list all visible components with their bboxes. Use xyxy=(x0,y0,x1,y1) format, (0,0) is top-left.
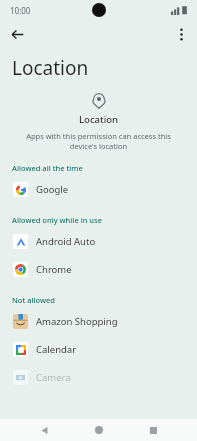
button[interactable]: Android Auto xyxy=(0,227,197,255)
staticText: Chrome xyxy=(36,263,72,276)
staticText: Calendar xyxy=(36,343,77,356)
button[interactable]: Recent apps xyxy=(143,420,163,440)
button[interactable]: More options xyxy=(170,23,192,45)
staticText: Location xyxy=(79,113,118,126)
staticText: Camera xyxy=(36,371,71,384)
staticText: Android Auto xyxy=(36,235,96,248)
button[interactable]: Google xyxy=(0,175,197,203)
button[interactable]: Amazon Shopping xyxy=(0,307,197,335)
staticText: Allowed only while in use xyxy=(12,215,102,225)
button[interactable]: Back xyxy=(6,23,28,45)
button[interactable]: Chrome xyxy=(0,255,197,283)
staticText: Not allowed xyxy=(12,295,56,305)
staticText: Google xyxy=(36,183,69,196)
button[interactable]: Camera xyxy=(0,363,197,391)
button[interactable]: Home xyxy=(89,420,109,440)
staticText: Amazon Shopping xyxy=(36,315,118,328)
staticText: Apps with this permission can access thi… xyxy=(22,131,175,151)
staticText: 10:00 xyxy=(10,5,31,16)
button[interactable]: Back xyxy=(34,420,54,440)
button[interactable]: Calendar xyxy=(0,335,197,363)
staticText: Allowed all the time xyxy=(12,163,83,173)
staticText: Location xyxy=(12,55,89,81)
